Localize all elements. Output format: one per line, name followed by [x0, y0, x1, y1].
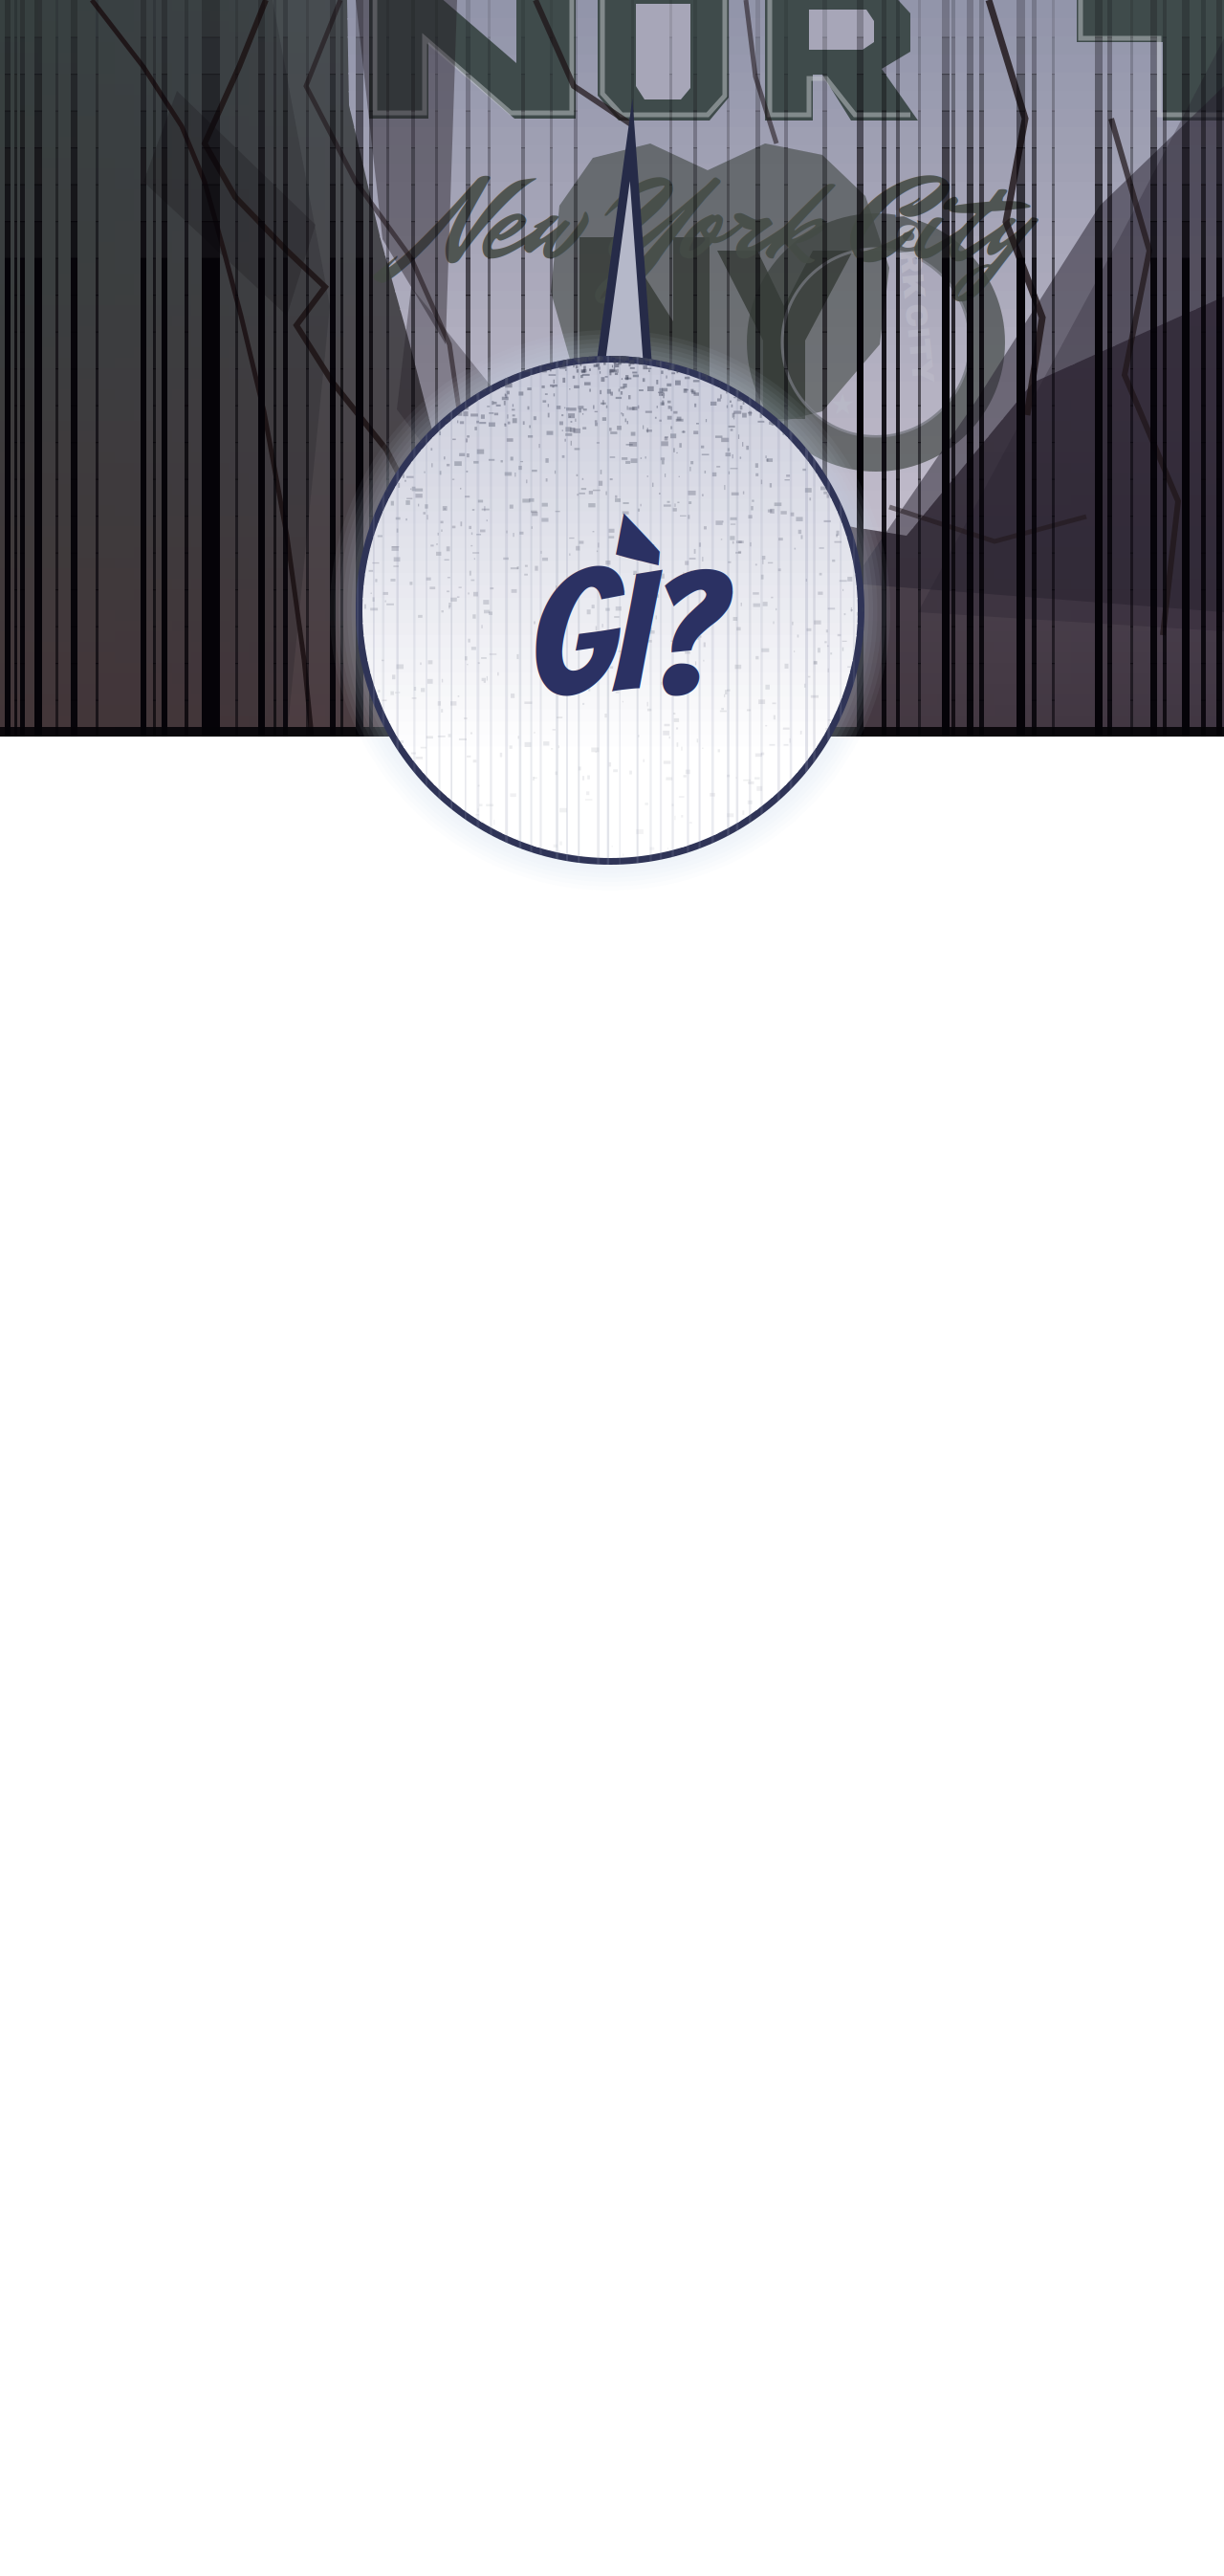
staticText: New York City [419, 138, 1027, 307]
staticText: YORK CITY [822, 275, 1006, 309]
staticText: GÌ? [529, 543, 720, 722]
staticText: ★ [830, 388, 855, 420]
